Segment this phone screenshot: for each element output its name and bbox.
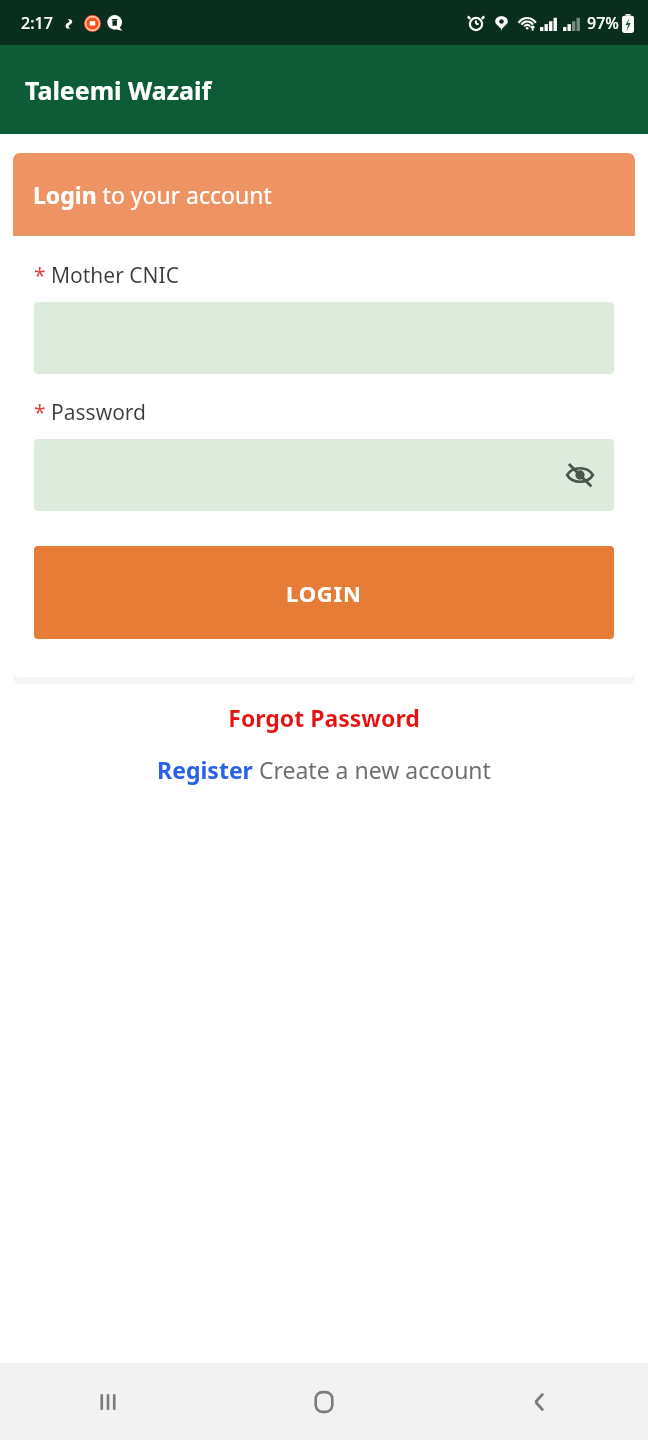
button[interactable]: Register Create a new account xyxy=(0,754,648,785)
button[interactable]: Home xyxy=(216,1363,432,1440)
staticText: Forgot Password xyxy=(228,702,420,733)
staticText: 97% xyxy=(587,12,619,34)
staticText: Login to your account xyxy=(33,179,272,210)
staticText: * Password xyxy=(34,398,147,427)
button[interactable]: Show password xyxy=(558,453,602,497)
staticText: 2:17 xyxy=(21,12,53,34)
staticText: * Mother CNIC xyxy=(34,261,179,290)
button[interactable]: LOGIN xyxy=(34,546,614,639)
staticText: Register Create a new account xyxy=(157,754,491,785)
button[interactable]: Back xyxy=(432,1363,648,1440)
button[interactable]: Show password xyxy=(34,439,614,511)
staticText: LOGIN xyxy=(286,578,362,608)
button[interactable]: Forgot Password xyxy=(0,702,648,733)
button[interactable]: Recents xyxy=(0,1363,216,1440)
staticText: 8171.com.pk xyxy=(31,230,540,627)
staticText: Taleemi Wazaif xyxy=(25,73,212,107)
